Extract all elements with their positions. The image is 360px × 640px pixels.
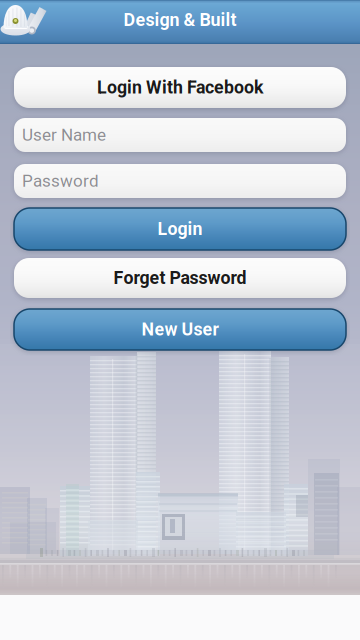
button[interactable]: New User [14, 309, 346, 350]
button[interactable]: Login With Facebook [14, 67, 346, 108]
staticText: Forget Password [113, 268, 246, 288]
button[interactable]: Login [14, 208, 346, 250]
staticText: Login [157, 219, 202, 239]
staticText: User Name [22, 125, 106, 145]
staticText: Password [22, 171, 99, 191]
staticText: Design & Built [123, 9, 236, 30]
staticText: New User [141, 319, 218, 340]
button[interactable]: Forget Password [14, 258, 346, 298]
staticText: Login With Facebook [97, 77, 263, 98]
